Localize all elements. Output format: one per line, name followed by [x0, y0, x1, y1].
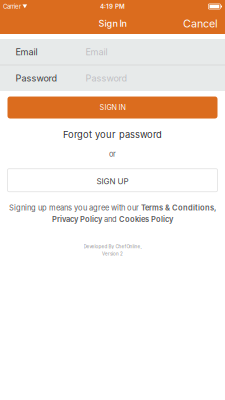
staticText: Signing up means you agree with our Term… — [9, 203, 216, 212]
staticText: SIGN UP — [96, 177, 128, 186]
staticText: Email — [15, 46, 37, 57]
staticText: 4:19 PM — [100, 3, 125, 10]
button[interactable]: Forgot your password — [63, 129, 162, 140]
staticText: Password — [85, 73, 127, 84]
staticText: Cancel — [183, 17, 218, 30]
staticText: Forgot your password — [63, 129, 162, 140]
staticText: Carrier — [3, 3, 21, 10]
staticText: Developed By ChefOnline, — [83, 244, 141, 249]
staticText: SIGN IN — [99, 103, 125, 112]
staticText: Email — [85, 46, 107, 57]
button[interactable]: SIGN UP — [7, 169, 217, 192]
staticText: or — [109, 149, 116, 158]
staticText: Version 2 — [102, 251, 123, 257]
staticText: Password — [15, 73, 57, 84]
staticText: Sign In — [98, 18, 126, 29]
button[interactable]: Cancel — [176, 13, 225, 34]
staticText: Privacy Policy and Cookies Policy — [52, 215, 173, 224]
button[interactable]: SIGN IN — [7, 96, 217, 118]
